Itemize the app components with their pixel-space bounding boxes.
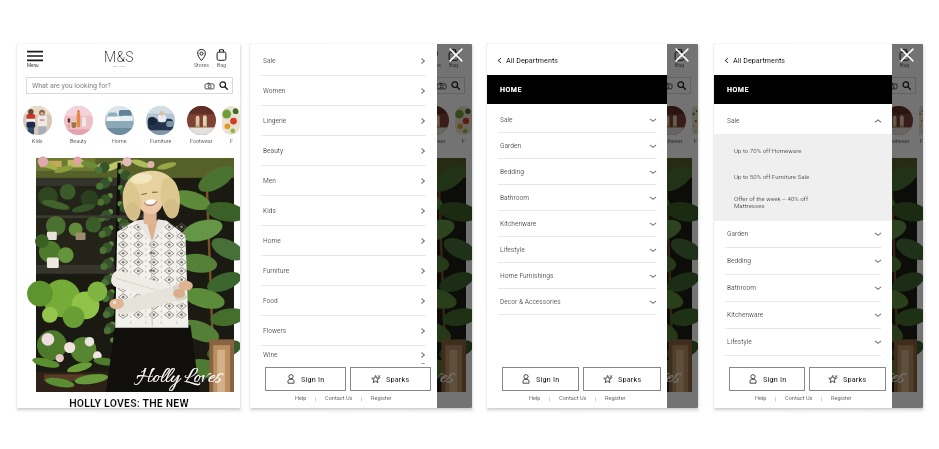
button[interactable]: HOME — [714, 75, 892, 104]
button[interactable]: Close menu — [900, 48, 914, 62]
button[interactable]: Beauty — [58, 106, 99, 144]
button[interactable]: Kids — [17, 106, 58, 144]
button[interactable]: Furniture — [250, 256, 437, 285]
button[interactable]: Home Furnishings — [487, 263, 667, 288]
button[interactable]: Men — [250, 166, 437, 195]
button[interactable]: Kids — [250, 106, 291, 144]
button[interactable]: Furniture — [373, 106, 414, 144]
button[interactable]: Kids — [487, 106, 528, 144]
button[interactable]: Contact Us — [325, 395, 353, 402]
button[interactable]: Sign In — [729, 367, 805, 391]
button[interactable]: Sale — [250, 46, 437, 75]
staticText: Decor & Accessories — [500, 298, 561, 306]
button[interactable]: Beauty — [250, 136, 437, 165]
button[interactable]: HOME — [487, 75, 667, 104]
button[interactable]: Register — [831, 395, 852, 402]
button[interactable]: Furniture — [837, 106, 878, 144]
button[interactable]: Bathroom — [487, 185, 667, 210]
button[interactable]: Home — [796, 106, 837, 144]
button[interactable]: F — [222, 106, 240, 144]
button[interactable]: Bag — [448, 49, 459, 68]
staticText: | — [549, 396, 551, 402]
button[interactable]: Bag — [899, 49, 910, 68]
button[interactable]: Decor & Accessories — [487, 289, 667, 314]
staticText: Footwear — [887, 138, 910, 144]
button[interactable]: F — [455, 106, 472, 144]
button[interactable]: Up to 50% off Furniture Sale — [714, 163, 892, 189]
button[interactable]: Contact Us — [785, 395, 813, 402]
button[interactable]: Kitchenware — [487, 211, 667, 236]
button[interactable]: Beauty — [755, 106, 796, 144]
button[interactable]: Sparks — [809, 367, 886, 391]
button[interactable]: Bedding — [487, 159, 667, 184]
button[interactable]: Stores — [426, 49, 441, 68]
button[interactable]: Contact Us — [559, 395, 587, 402]
button[interactable]: What are you looking for? — [26, 77, 233, 94]
button[interactable]: Footwear — [878, 106, 919, 144]
button[interactable]: F — [692, 106, 698, 144]
button[interactable]: Menu — [259, 50, 277, 68]
button[interactable]: Menu — [496, 50, 514, 68]
button[interactable]: Beauty — [528, 106, 569, 144]
button[interactable]: Register — [371, 395, 392, 402]
button[interactable]: Footwear — [414, 106, 455, 144]
button[interactable]: Furniture — [610, 106, 651, 144]
button[interactable]: What are you looking for? — [259, 77, 465, 94]
button[interactable]: Wine — [250, 346, 437, 364]
button[interactable]: Sale — [714, 107, 892, 134]
staticText: HOLLY LOVES: THE NEW — [301, 397, 421, 408]
button[interactable]: Sparks — [350, 367, 431, 391]
button[interactable]: Bedding — [714, 248, 892, 274]
button[interactable]: Home — [99, 106, 140, 144]
button[interactable]: Furniture — [140, 106, 181, 144]
button[interactable]: All Departments — [714, 44, 892, 75]
button[interactable]: Beauty — [291, 106, 332, 144]
button[interactable]: Lifestyle — [714, 329, 892, 355]
button[interactable]: Help — [755, 395, 767, 402]
button[interactable]: Home — [332, 106, 373, 144]
button[interactable]: Home — [250, 226, 437, 255]
button[interactable]: Lifestyle — [487, 237, 667, 262]
button[interactable]: Women — [250, 76, 437, 105]
staticText: All Departments — [506, 56, 558, 64]
button[interactable]: Help — [529, 395, 541, 402]
other: Search — [219, 81, 228, 90]
button[interactable]: What are you looking for? — [723, 77, 916, 94]
button[interactable]: Kids — [250, 196, 437, 225]
button[interactable]: Sale — [487, 107, 667, 132]
button[interactable]: Food — [250, 286, 437, 315]
button[interactable]: Stores — [194, 49, 209, 68]
button[interactable]: Kitchenware — [714, 302, 892, 328]
button[interactable]: Close menu — [675, 48, 689, 62]
button[interactable]: Footwear — [181, 106, 222, 144]
button[interactable]: Garden — [714, 221, 892, 247]
button[interactable]: All Departments — [487, 44, 667, 75]
button[interactable]: Kids — [714, 106, 755, 144]
button[interactable]: Sign In — [265, 367, 346, 391]
button[interactable]: Sparks — [583, 367, 661, 391]
button[interactable]: Help — [295, 395, 307, 402]
button[interactable]: Up to 70% off Homeware — [714, 137, 892, 163]
button[interactable]: Bag — [674, 49, 685, 68]
staticText: Furniture — [263, 267, 290, 275]
button[interactable]: Footwear — [651, 106, 692, 144]
button[interactable]: Garden — [487, 133, 667, 158]
button[interactable]: Flowers — [250, 316, 437, 345]
button[interactable]: Bathroom — [714, 275, 892, 301]
button[interactable]: Sign In — [502, 367, 579, 391]
button[interactable]: Offer of the week – 40% off Mattresses — [714, 189, 892, 215]
button[interactable]: Lingerie — [250, 106, 437, 135]
staticText: Footwear — [190, 138, 213, 144]
button[interactable]: Bag — [216, 49, 227, 68]
button[interactable]: What are you looking for? — [496, 77, 691, 94]
button[interactable]: Menu — [723, 50, 741, 68]
button[interactable]: F — [919, 106, 923, 144]
button[interactable]: Close menu — [449, 48, 463, 62]
button[interactable]: Register — [605, 395, 626, 402]
button[interactable]: Menu — [26, 50, 44, 68]
button[interactable]: Home — [569, 106, 610, 144]
